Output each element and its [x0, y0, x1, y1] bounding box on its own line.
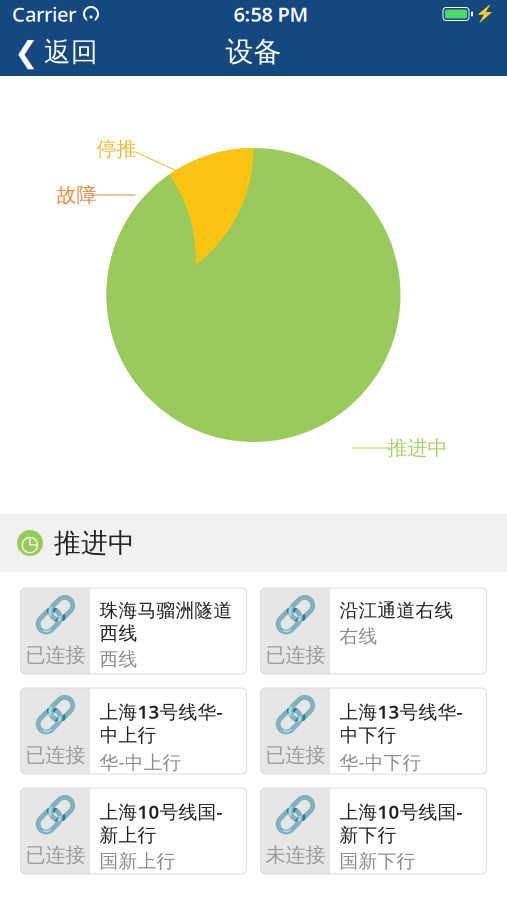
staticText: 6:58 PM [233, 1, 308, 27]
staticText: 沿江通道右线 [339, 599, 453, 622]
staticText: 国新上行 [99, 850, 175, 873]
staticText: 华-中下行 [339, 750, 421, 774]
staticText: Carrier [12, 1, 76, 27]
staticText: 珠海马骝洲隧道西线 [99, 599, 232, 645]
staticText: 已连接 [25, 843, 85, 867]
staticText: ❮ [14, 35, 39, 69]
button[interactable]: 🔗 [260, 588, 486, 674]
staticText: 停推 [96, 137, 136, 161]
staticText: 华-中上行 [99, 750, 181, 774]
button[interactable]: 🔗 [20, 688, 246, 774]
staticText: ◷ [20, 531, 39, 555]
button[interactable]: ❮ [0, 28, 112, 76]
staticText: 已连接 [265, 743, 325, 767]
staticText: 上海13号线华-中上行 [99, 699, 222, 747]
staticText: 设备 [225, 35, 281, 69]
staticText: 返回 [44, 36, 98, 68]
staticText: 已连接 [25, 643, 85, 667]
staticText: 已连接 [265, 643, 325, 667]
staticText: 上海10号线国-新上行 [99, 799, 222, 847]
staticText: 上海13号线华-中下行 [339, 699, 462, 747]
staticText: 已连接 [25, 743, 85, 767]
staticText: ⚡ [475, 5, 495, 23]
staticText: 右线 [339, 625, 377, 648]
staticText: 推进中 [387, 436, 447, 460]
staticText: 🔗 [273, 594, 318, 635]
staticText: 🔗 [273, 694, 318, 735]
staticText: 🔗 [33, 794, 78, 835]
staticText: 上海10号线国-新下行 [339, 799, 462, 847]
staticText: 🔗 [33, 594, 78, 635]
staticText: 🔗 [273, 794, 318, 835]
staticText: 推进中 [54, 527, 135, 559]
button[interactable]: 🔗 [20, 588, 246, 674]
staticText: 故障 [56, 183, 96, 207]
button[interactable]: 🔗 [260, 788, 486, 874]
staticText: 🔗 [33, 694, 78, 735]
button[interactable]: 🔗 [20, 788, 246, 874]
staticText: 西线 [99, 648, 137, 671]
button[interactable]: 🔗 [260, 688, 486, 774]
staticText: 国新下行 [339, 850, 415, 873]
staticText: 未连接 [265, 843, 325, 867]
